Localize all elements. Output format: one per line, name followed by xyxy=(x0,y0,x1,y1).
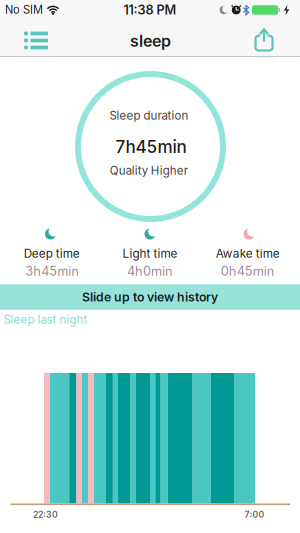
staticText: 3h45min xyxy=(25,263,79,279)
staticText: Deep time xyxy=(24,246,80,261)
button[interactable] xyxy=(249,25,279,55)
staticText: Slide up to view history xyxy=(82,290,218,304)
staticText: Awake time xyxy=(216,246,280,261)
staticText: 11:38 PM xyxy=(123,2,176,17)
button[interactable]: Slide up to view history xyxy=(0,284,300,310)
staticText: Sleep duration xyxy=(109,109,188,122)
staticText: 0h45min xyxy=(221,263,275,279)
staticText: 7h45min xyxy=(115,136,186,157)
staticText: 22:30 xyxy=(33,509,58,520)
button[interactable] xyxy=(22,29,50,51)
staticText: 7:00 xyxy=(244,509,264,520)
staticText: No SIM xyxy=(5,3,43,16)
staticText: sleep xyxy=(130,31,171,51)
staticText: 4h0min xyxy=(127,263,173,279)
staticText: Quality Higher xyxy=(110,164,188,177)
staticText: Sleep last night xyxy=(3,313,87,326)
staticText: Light time xyxy=(122,246,177,261)
